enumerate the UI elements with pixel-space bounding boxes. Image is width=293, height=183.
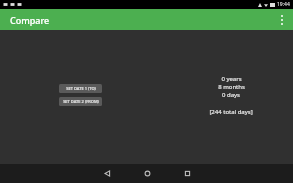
button[interactable]: SET DATE 1 (TO) [59, 84, 102, 93]
button[interactable]: Recent apps [167, 164, 207, 183]
button[interactable]: More options [271, 9, 293, 30]
button[interactable]: Back [87, 164, 127, 183]
staticText: 8 months [218, 83, 245, 91]
staticText: [244 total days] [209, 108, 253, 116]
staticText: 0 days [222, 91, 240, 99]
staticText: Compare [10, 14, 50, 26]
staticText: 19:44 [277, 1, 290, 8]
button[interactable]: SET DATE 2 (FROM) [59, 97, 102, 106]
staticText: SET DATE 1 (TO) [66, 86, 96, 91]
staticText: SET DATE 2 (FROM) [63, 99, 99, 104]
button[interactable]: Home [127, 164, 167, 183]
staticText: 0 years [221, 75, 242, 83]
